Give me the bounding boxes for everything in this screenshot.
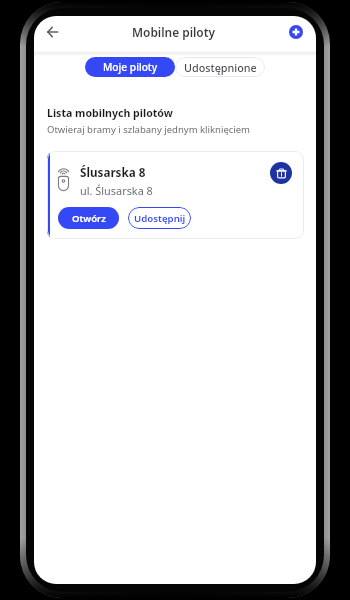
button[interactable]: Otwórz (58, 207, 119, 229)
staticText: Moje piloty (103, 60, 158, 74)
button[interactable]: Back (39, 18, 66, 45)
staticText: Mobilne piloty (132, 24, 216, 40)
staticText: ul. Ślusarska 8 (80, 183, 153, 198)
staticText: Udostępnione (184, 60, 257, 75)
staticText: Otwórz (72, 212, 106, 225)
button[interactable]: Udostępnij (128, 207, 191, 229)
button[interactable]: Add (289, 25, 303, 39)
staticText: Lista mobilnych pilotów (47, 106, 173, 120)
staticText: Ślusarska 8 (80, 164, 146, 180)
button[interactable]: Udostępnione (175, 57, 265, 77)
staticText: Udostępnij (134, 212, 186, 225)
button[interactable]: Moje piloty (85, 57, 175, 77)
button[interactable]: Delete (270, 162, 292, 184)
staticText: Otwieraj bramy i szlabany jednym kliknię… (47, 123, 250, 136)
